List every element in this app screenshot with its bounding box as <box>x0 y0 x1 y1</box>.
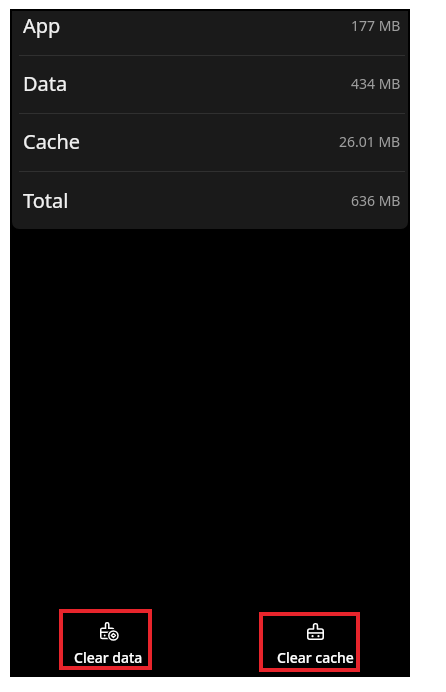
staticText: Cache <box>23 128 81 155</box>
button[interactable]: App <box>12 11 408 55</box>
staticText: 177 MB <box>351 16 401 35</box>
staticText: 636 MB <box>351 191 401 210</box>
staticText: App <box>23 12 61 39</box>
staticText: 26.01 MB <box>339 132 401 151</box>
staticText: Clear cache <box>277 648 354 667</box>
button[interactable]: Clear cache <box>259 612 360 672</box>
button[interactable]: Data <box>12 56 408 113</box>
staticText: Clear data <box>74 648 143 667</box>
button[interactable]: Clear data <box>59 609 152 670</box>
staticText: Total <box>23 187 69 214</box>
staticText: 434 MB <box>351 74 401 93</box>
button[interactable]: Total <box>12 172 408 229</box>
staticText: Data <box>23 70 68 97</box>
button[interactable]: Cache <box>12 114 408 171</box>
